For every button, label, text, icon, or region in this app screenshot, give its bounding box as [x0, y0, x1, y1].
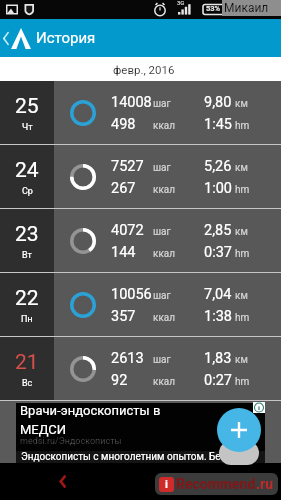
staticText: hm [235, 120, 250, 132]
button[interactable]: 24 [0, 145, 281, 208]
staticText: шаг [153, 290, 171, 302]
staticText: Эндоскописты с многолетним опытом. Без [21, 451, 226, 463]
staticText: medsi.ru/Эндоскописты [20, 436, 122, 447]
staticText: Чт [22, 122, 33, 133]
staticText: 1:38 [204, 308, 232, 325]
button[interactable]: 21 [0, 337, 281, 400]
staticText: ккал [153, 120, 176, 132]
staticText: ккал [153, 184, 176, 196]
staticText: hm [235, 376, 250, 388]
staticText: 0:37 [204, 244, 232, 261]
staticText: 5,26 [204, 158, 232, 175]
staticText: Вт [22, 250, 32, 261]
staticText: hm [235, 248, 250, 260]
staticText: МЕДСИ [20, 422, 67, 437]
staticText: .ru [256, 476, 274, 492]
staticText: км [235, 226, 248, 238]
staticText: шаг [153, 98, 171, 110]
staticText: ккал [153, 248, 176, 260]
staticText: 24 [15, 158, 39, 183]
staticText: шаг [153, 162, 171, 174]
staticText: Пн [21, 314, 33, 325]
staticText: Recommend [176, 476, 256, 492]
staticText: Вс [22, 378, 33, 389]
staticText: км [235, 162, 248, 174]
button[interactable]: Add [217, 408, 261, 452]
staticText: шаг [153, 226, 171, 238]
staticText: 7527 [111, 158, 144, 175]
staticText: 7,04 [204, 286, 232, 303]
staticText: hm [235, 184, 250, 196]
staticText: 25 [15, 94, 39, 119]
staticText: 14008 [111, 94, 152, 111]
staticText: февр., 2016 [113, 63, 175, 76]
staticText: 498 [111, 116, 136, 133]
button[interactable]: 22 [0, 273, 281, 336]
staticText: шаг [153, 354, 171, 366]
staticText: 357 [111, 308, 136, 325]
staticText: Врачи-эндоскописты в [20, 403, 161, 418]
staticText: км [235, 354, 248, 366]
staticText: км [235, 98, 248, 110]
staticText: 53% [206, 4, 221, 13]
staticText: 1,83 [204, 350, 232, 367]
staticText: 267 [111, 180, 136, 197]
button[interactable]: Ad info [253, 402, 265, 413]
staticText: Микаил [224, 1, 269, 15]
staticText: 0:27 [204, 372, 232, 389]
button[interactable]: 25 [0, 81, 281, 144]
staticText: 2613 [111, 350, 144, 367]
staticText: ккал [153, 312, 176, 324]
staticText: 4072 [111, 222, 144, 239]
staticText: 23 [15, 222, 39, 247]
staticText: 9,80 [204, 94, 232, 111]
staticText: Ср [22, 186, 33, 197]
staticText: 1:45 [204, 116, 232, 133]
staticText: ккал [153, 376, 176, 388]
staticText: i [165, 478, 168, 491]
staticText: hm [235, 312, 250, 324]
staticText: 10056 [111, 286, 152, 303]
button[interactable]: Back [48, 463, 74, 500]
staticText: История [36, 29, 96, 47]
staticText: 22 [15, 286, 39, 311]
button[interactable]: Back [0, 19, 96, 57]
button[interactable]: Врачи-эндоскописты в [16, 403, 265, 451]
staticText: 144 [111, 244, 136, 261]
button[interactable]: 23 [0, 209, 281, 272]
staticText: км [235, 290, 248, 302]
other: Back [0, 19, 11, 57]
staticText: 2,85 [204, 222, 232, 239]
staticText: 92 [111, 372, 128, 389]
staticText: 21 [15, 350, 39, 375]
staticText: 3G [177, 0, 185, 6]
staticText: 1:00 [204, 180, 232, 197]
